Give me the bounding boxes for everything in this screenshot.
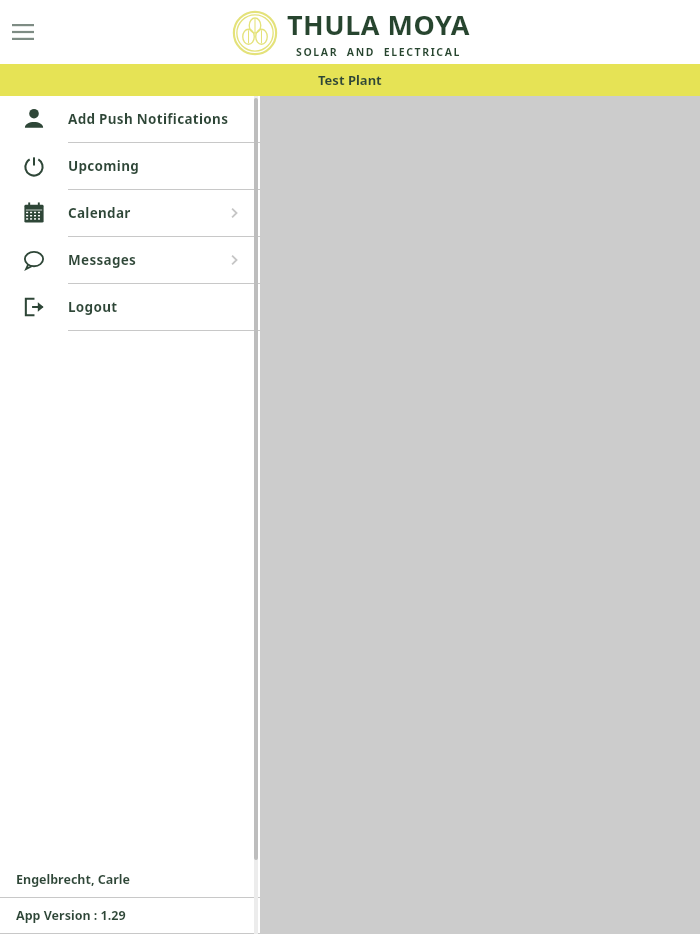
staticText: Logout	[68, 298, 240, 316]
button[interactable]: Add Push Notifications	[0, 96, 260, 142]
button[interactable]: Logout	[0, 284, 260, 330]
staticText: Add Push Notifications	[68, 110, 240, 128]
button[interactable]: Calendar	[0, 190, 260, 236]
staticText: Engelbrecht, Carle	[16, 871, 131, 888]
button[interactable]: Open navigation menu	[6, 15, 40, 49]
staticText: App Version : 1.29	[16, 907, 126, 924]
staticText: Messages	[68, 251, 226, 269]
staticText: Upcoming	[68, 157, 240, 175]
button[interactable]: Engelbrecht, Carle	[0, 861, 260, 897]
button[interactable]: App Version : 1.29	[0, 898, 260, 933]
staticText: Calendar	[68, 204, 226, 222]
button[interactable]: Messages	[0, 237, 260, 283]
staticText: THULA MOYA	[287, 6, 470, 43]
staticText: Test Plant	[318, 71, 382, 89]
staticText: SOLAR AND ELECTRICAL	[296, 45, 462, 59]
button[interactable]: Upcoming	[0, 143, 260, 189]
